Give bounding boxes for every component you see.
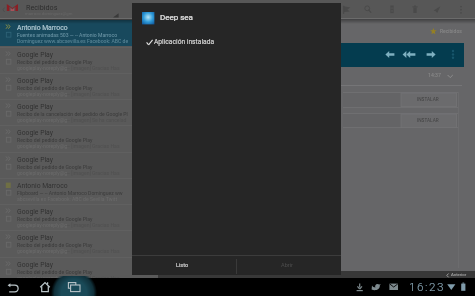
staticText: Recibidos bbox=[26, 3, 58, 11]
staticText: Fuentes animadas 503 — -- Antonio Marroc… bbox=[17, 32, 118, 38]
button[interactable]: INSTALAR bbox=[401, 93, 457, 107]
button[interactable]: Message options bbox=[445, 45, 461, 63]
staticText: Recibidos bbox=[440, 28, 462, 34]
staticText: googleplay-noreply@g bbox=[17, 91, 68, 97]
button[interactable]: Back bbox=[4, 278, 24, 296]
button[interactable]: Google Play bbox=[0, 99, 158, 125]
staticText: Recibo del pedido de Google Play bbox=[17, 137, 93, 143]
staticText: abcsevilla es Facebook: ABC de Sevilla T… bbox=[17, 196, 118, 202]
staticText: googleplay-noreply@g bbox=[17, 170, 68, 176]
button[interactable]: Google Play bbox=[0, 73, 158, 99]
button[interactable]: Reply all bbox=[401, 45, 419, 63]
staticText: Flipboard — -- Antonio Marroco Dominguez… bbox=[17, 190, 123, 196]
staticText: Anterior bbox=[451, 272, 467, 277]
staticText: Google Play bbox=[17, 208, 53, 216]
staticText: Listo bbox=[176, 262, 189, 269]
staticText: Google Play bbox=[17, 129, 53, 137]
button[interactable]: INSTALAR bbox=[401, 114, 457, 128]
button[interactable]: Google Play bbox=[0, 47, 158, 73]
staticText: Google Play bbox=[17, 156, 53, 164]
staticText: Recibo del pedido de Google Play bbox=[17, 85, 93, 91]
staticText: googleplay-noreply@g bbox=[17, 275, 68, 281]
button[interactable]: Forward bbox=[423, 45, 441, 63]
staticText: 14:37 bbox=[428, 72, 441, 78]
button[interactable]: Google Play bbox=[0, 230, 158, 256]
staticText: Antonio Marroco bbox=[17, 24, 68, 32]
button[interactable]: Listo bbox=[132, 256, 237, 275]
staticText: googleplay-noreply@g bbox=[17, 143, 68, 149]
button[interactable] bbox=[158, 271, 475, 279]
staticText: googleplay-noreply@g bbox=[17, 222, 68, 228]
staticText: googleplay-noreply@g bbox=[17, 117, 68, 123]
staticText: Google Play bbox=[17, 103, 53, 111]
staticText: Abrir bbox=[281, 262, 293, 269]
staticText: INSTALAR bbox=[417, 97, 439, 103]
button[interactable]: Google Play bbox=[0, 152, 158, 178]
staticText: Recibo del pedido de Google Play bbox=[17, 164, 93, 170]
staticText: Recibo del pedido de Google Play bbox=[17, 59, 93, 65]
staticText: Google Play bbox=[17, 261, 53, 269]
staticText: Deep sea bbox=[160, 13, 193, 22]
staticText: Antonio Marroco bbox=[17, 182, 68, 190]
button[interactable]: Delete bbox=[406, 0, 424, 18]
button[interactable]: Antonio Marroco bbox=[0, 178, 158, 204]
staticText: Aplicación instalada bbox=[154, 38, 215, 46]
button[interactable]: Abrir bbox=[237, 256, 342, 275]
staticText: Recibo de la cancelación del pedido de G… bbox=[17, 111, 128, 117]
staticText: Google Play bbox=[17, 234, 53, 242]
button[interactable]: Labels bbox=[338, 0, 356, 18]
staticText: Recibo del pedido de Google Play bbox=[17, 269, 93, 275]
button[interactable]: Google Play bbox=[0, 257, 158, 283]
button[interactable]: Google Play bbox=[0, 204, 158, 230]
button[interactable]: Google Play bbox=[0, 125, 158, 151]
staticText: INSTALAR bbox=[417, 118, 439, 124]
button[interactable]: Gmail bbox=[6, 3, 19, 12]
button[interactable]: Reply bbox=[381, 45, 399, 63]
staticText: Google Play bbox=[17, 51, 53, 59]
staticText: — [imagen] Gracias Has bbox=[66, 275, 120, 281]
staticText: googleplay-noreply@g bbox=[17, 248, 68, 254]
staticText: 16:23 bbox=[409, 280, 445, 294]
staticText: Dominguez www.abcsevilla.es Facebook: AB… bbox=[17, 38, 129, 44]
staticText: Recibo del pedido de Google Play bbox=[17, 216, 93, 222]
staticText: Google Play bbox=[17, 77, 53, 85]
staticText: Recibo del pedido de Google Play bbox=[17, 242, 93, 248]
button[interactable]: Recent apps bbox=[64, 278, 86, 296]
staticText: marroco.dominguez@gm bbox=[25, 11, 73, 16]
button[interactable]: Antonio Marroco bbox=[0, 20, 158, 46]
button[interactable]: Home bbox=[35, 278, 55, 296]
staticText: googleplay-noreply@g bbox=[17, 65, 68, 71]
